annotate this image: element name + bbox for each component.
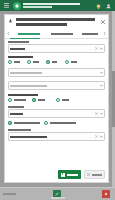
button[interactable]: Menu <box>3 2 10 9</box>
button[interactable] <box>8 81 105 90</box>
button[interactable]: Close <box>99 18 106 25</box>
button[interactable] <box>65 60 84 64</box>
button[interactable] <box>27 60 46 64</box>
button[interactable] <box>8 109 105 118</box>
button[interactable] <box>56 98 80 102</box>
button[interactable] <box>8 68 105 77</box>
button[interactable] <box>77 29 102 38</box>
button[interactable] <box>84 170 105 179</box>
button[interactable]: Logo <box>13 2 21 10</box>
button[interactable]: App <box>53 190 61 198</box>
button[interactable] <box>46 60 65 64</box>
button[interactable] <box>8 44 105 53</box>
button[interactable] <box>46 29 77 38</box>
button[interactable] <box>58 170 81 179</box>
button[interactable]: Recorder <box>102 190 110 198</box>
button[interactable]: Account <box>104 2 112 10</box>
button[interactable] <box>8 98 32 102</box>
button[interactable] <box>12 29 46 38</box>
button[interactable] <box>8 132 105 141</box>
button[interactable] <box>8 60 27 64</box>
button[interactable]: Notifications <box>94 2 102 10</box>
button[interactable] <box>32 98 56 102</box>
